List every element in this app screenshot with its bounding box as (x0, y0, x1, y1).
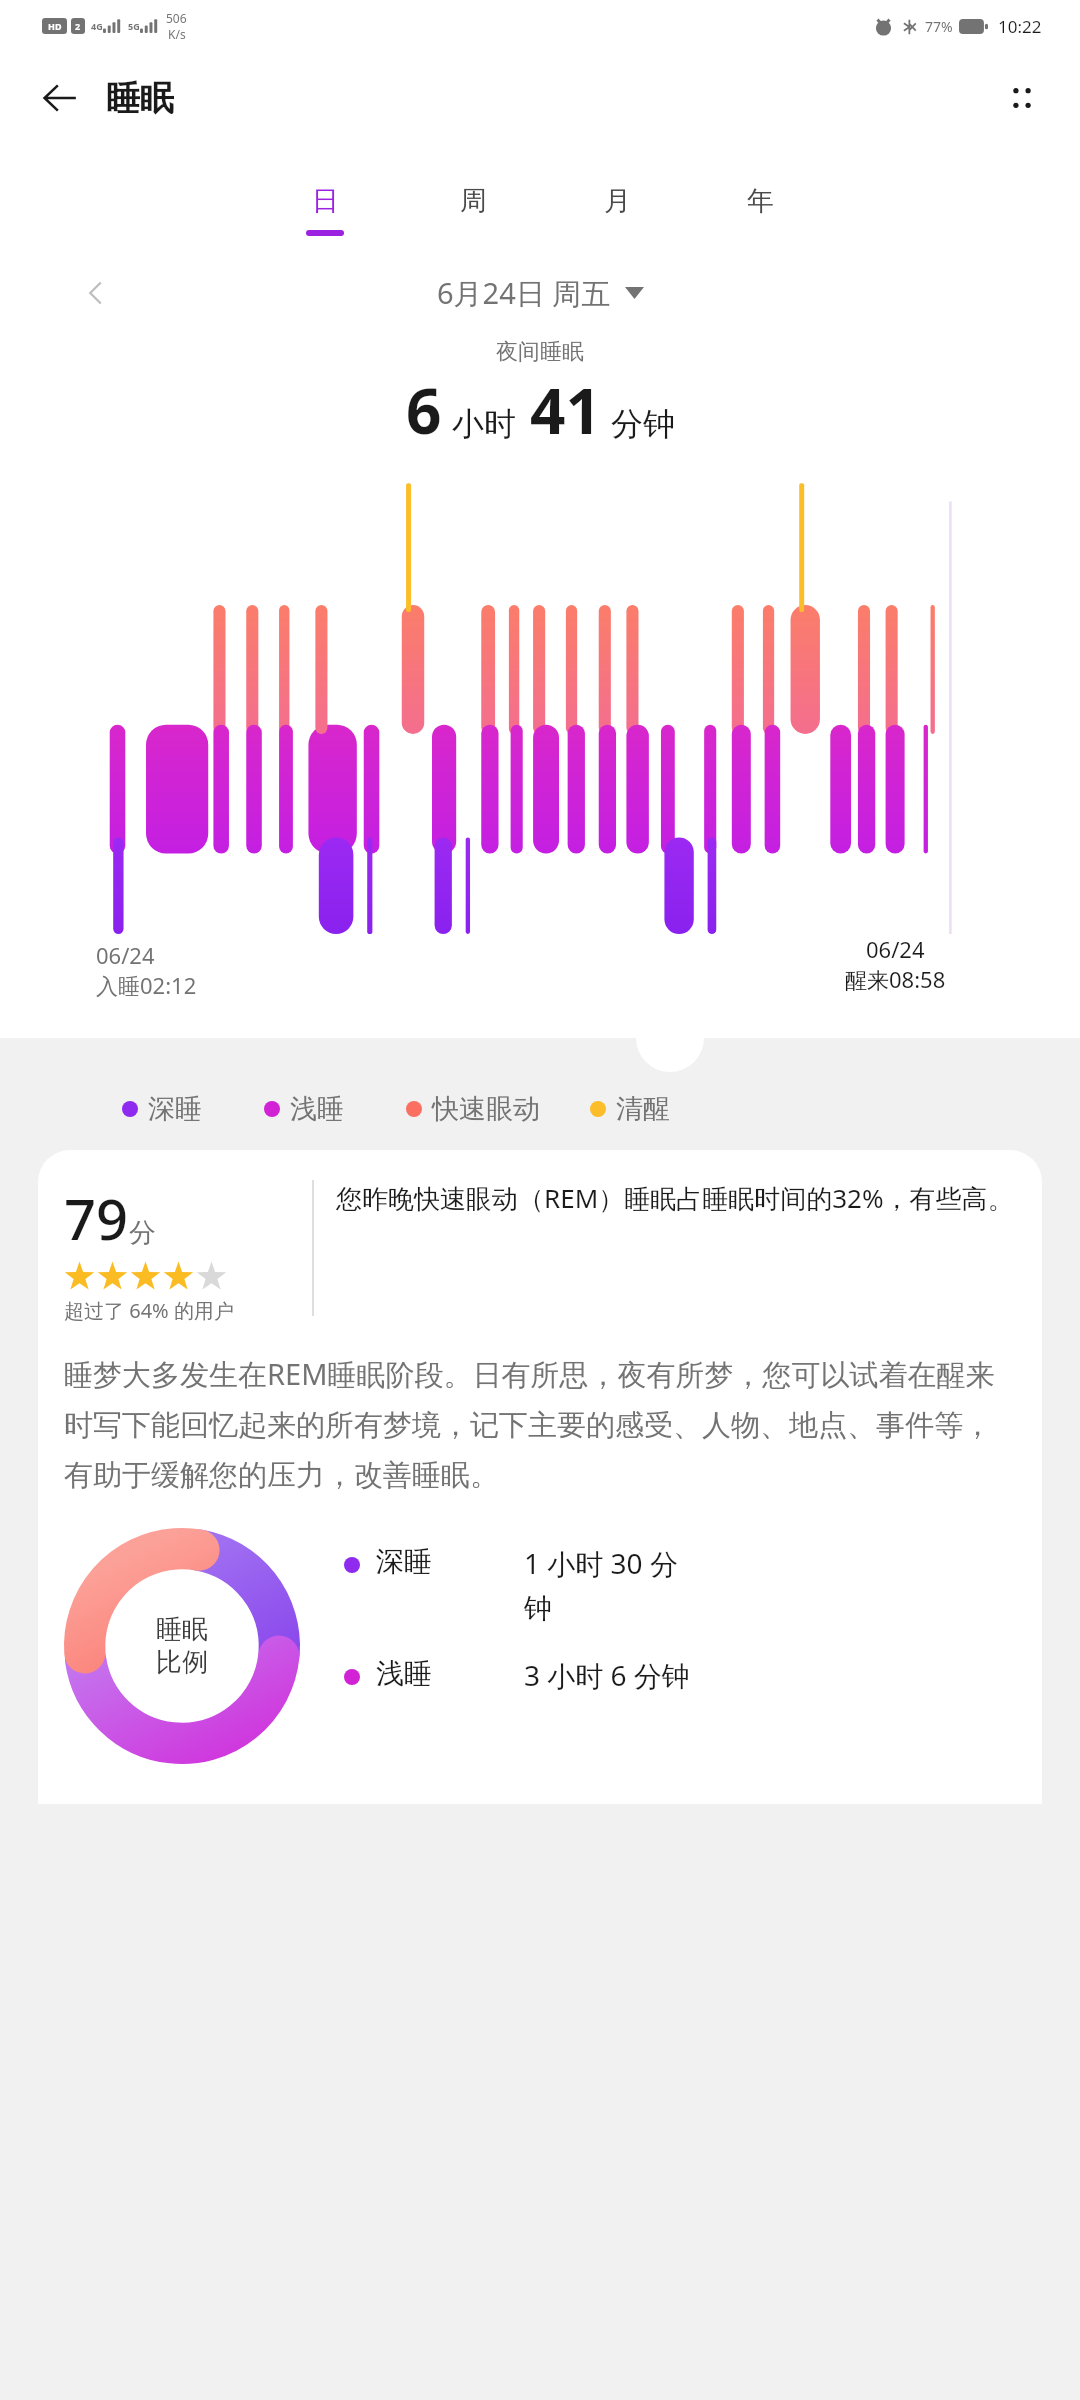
staticText: 4G (91, 20, 103, 32)
button[interactable]: 日 (296, 184, 354, 236)
staticText: 小时 (452, 404, 516, 444)
button[interactable]: Previous day (72, 269, 120, 317)
staticText: 1 小时 30 分钟 (524, 1544, 692, 1626)
button[interactable]: More options (992, 68, 1052, 128)
staticText: 06/24 (96, 940, 155, 970)
staticText: 睡眠 (156, 1613, 208, 1646)
staticText: K/s (168, 26, 186, 42)
button[interactable]: 快速眼动 (406, 1092, 540, 1126)
staticText: HD (48, 20, 62, 32)
staticText: 快速眼动 (432, 1092, 540, 1126)
button[interactable]: 深睡 (122, 1092, 202, 1126)
staticText: 睡梦大多发生在REM睡眠阶段。日有所思，夜有所梦，您可以试着在醒来时写下能回忆起… (64, 1354, 1016, 1494)
button[interactable]: 年 (737, 184, 784, 236)
staticText: 3 小时 6 分钟 (524, 1656, 692, 1694)
button[interactable]: 6月24日 周五 (429, 265, 652, 321)
button[interactable]: 月 (594, 184, 641, 236)
staticText: 入睡02:12 (96, 970, 197, 1000)
staticText: 6 (406, 368, 442, 452)
staticText: 79 (64, 1180, 129, 1256)
staticText: 2 (75, 20, 81, 32)
staticText: 5G (128, 20, 140, 32)
staticText: 年 (747, 184, 774, 218)
button[interactable]: 周 (450, 184, 497, 236)
staticText: 浅睡 (376, 1656, 524, 1691)
staticText: 醒来08:58 (845, 964, 946, 994)
staticText: 超过了 64% 的用户 (64, 1297, 234, 1324)
staticText: 77% (925, 17, 953, 36)
button[interactable]: 深睡 (344, 1544, 1042, 1626)
staticText: 周 (460, 184, 487, 218)
button[interactable]: 浅睡 (344, 1656, 1042, 1694)
staticText: 比例 (156, 1646, 208, 1679)
staticText: 深睡 (376, 1544, 524, 1579)
staticText: 6月24日 周五 (437, 273, 611, 313)
button[interactable]: 浅睡 (264, 1092, 344, 1126)
staticText: 06/24 (866, 934, 925, 964)
staticText: 睡眠 (106, 77, 174, 120)
staticText: 日 (312, 184, 339, 218)
button[interactable]: 清醒 (590, 1092, 670, 1126)
staticText: 清醒 (616, 1092, 670, 1126)
button[interactable]: Back (30, 68, 90, 128)
staticText: 10:22 (998, 15, 1042, 38)
staticText: 分钟 (611, 404, 675, 444)
staticText: 月 (604, 184, 631, 218)
staticText: 深睡 (148, 1092, 202, 1126)
staticText: 您昨晚快速眼动（REM）睡眠占睡眠时间的32%，有些高。 (336, 1180, 1020, 1216)
staticText: 分 (129, 1216, 156, 1250)
button[interactable]: Expand chart (636, 1004, 704, 1072)
staticText: 41 (530, 368, 601, 452)
staticText: 506 (166, 10, 187, 26)
staticText: 夜间睡眠 (0, 338, 1080, 366)
staticText: 浅睡 (290, 1092, 344, 1126)
